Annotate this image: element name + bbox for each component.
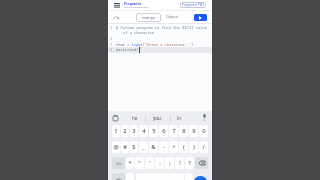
button[interactable]: $: [130, 141, 138, 153]
staticText: 0: [202, 127, 206, 135]
button[interactable]: you: [153, 115, 161, 121]
button[interactable]: ;: [165, 157, 174, 169]
staticText: 8: [182, 127, 186, 135]
button[interactable]: _: [139, 141, 148, 153]
button[interactable]: -: [159, 141, 168, 153]
button[interactable]: &: [149, 141, 158, 153]
button[interactable]: [195, 157, 208, 169]
staticText: $: [132, 143, 136, 151]
staticText: 7: [172, 127, 176, 135]
button[interactable]: [113, 15, 119, 21]
button[interactable]: [194, 176, 207, 180]
staticText: =\<: [116, 161, 122, 166]
staticText: Output: [166, 14, 179, 19]
staticText: 9: [192, 127, 196, 135]
staticText: main.py: [142, 15, 155, 20]
staticText: ;: [169, 159, 171, 167]
staticText: Programiz PRO: [182, 3, 204, 7]
staticText: @: [113, 143, 119, 151]
staticText: 4: [142, 127, 146, 135]
button[interactable]: +: [169, 141, 178, 153]
button[interactable]: #: [121, 141, 129, 153]
button[interactable]: 4: [139, 125, 148, 137]
staticText: !: [179, 159, 181, 167]
staticText: *: [128, 159, 132, 167]
staticText: +: [172, 143, 176, 151]
staticText: ": [138, 159, 141, 167]
button[interactable]: 5: [149, 125, 158, 137]
staticText: 5: [152, 127, 156, 135]
button[interactable]: /: [199, 141, 208, 153]
button[interactable]: he: [132, 115, 138, 121]
button[interactable]: :: [155, 157, 164, 169]
button[interactable]: [202, 114, 207, 121]
button[interactable]: 3: [130, 125, 138, 137]
staticText: ): [193, 143, 195, 151]
button[interactable]: Output: [166, 14, 179, 19]
button[interactable]: @: [112, 141, 120, 153]
button[interactable]: 6: [159, 125, 168, 137]
staticText: abc: [116, 177, 122, 180]
button[interactable]: [114, 3, 120, 7]
staticText: 4: [110, 47, 113, 52]
staticText: ascii(ord(: [116, 47, 139, 52]
staticText: Python Online Compiler: [124, 6, 149, 9]
staticText: ?: [188, 159, 191, 167]
button[interactable]: (: [179, 141, 188, 153]
staticText: &: [151, 143, 156, 151]
staticText: 3: [132, 127, 136, 135]
button[interactable]: 7: [169, 125, 178, 137]
button[interactable]: =\<: [112, 157, 125, 169]
staticText: 1: [110, 25, 113, 30]
button[interactable]: 9: [189, 125, 198, 137]
button[interactable]: Programiz PRO: [180, 2, 206, 8]
button[interactable]: [194, 14, 207, 21]
staticText: /: [202, 143, 205, 151]
button[interactable]: 1: [112, 125, 120, 137]
button[interactable]: ): [189, 141, 198, 153]
staticText: 6: [162, 127, 166, 135]
staticText: Programiz: [124, 1, 142, 6]
button[interactable]: 2: [121, 125, 129, 137]
button[interactable]: in: [177, 115, 181, 121]
button[interactable]: ?: [185, 157, 194, 169]
staticText: 2: [123, 127, 127, 135]
staticText: -: [163, 143, 165, 151]
staticText: of a character: [123, 30, 154, 35]
staticText: 3: [110, 42, 113, 47]
button[interactable]: *: [126, 157, 134, 169]
staticText: #: [123, 143, 127, 151]
staticText: 1: [114, 127, 118, 135]
staticText: _: [142, 143, 145, 151]
button[interactable]: ": [135, 157, 144, 169]
button[interactable]: [113, 115, 118, 121]
staticText: (: [183, 143, 185, 151]
staticText: char = input("Enter a character: "): [116, 42, 194, 47]
button[interactable]: 0: [199, 125, 208, 137]
button[interactable]: 8: [179, 125, 188, 137]
button[interactable]: main.py: [136, 13, 161, 22]
staticText: ': [149, 159, 151, 167]
staticText: :: [159, 159, 161, 167]
button[interactable]: abc: [112, 173, 125, 180]
button[interactable]: ': [145, 157, 154, 169]
button[interactable]: !: [175, 157, 184, 169]
staticText: 2: [110, 36, 113, 41]
staticText: # Python program to find the ASCII value: [116, 25, 208, 30]
